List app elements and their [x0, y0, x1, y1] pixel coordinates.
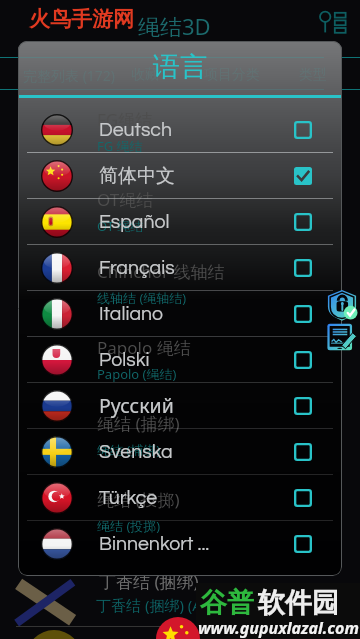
- staticText: FG绳结: [97, 108, 153, 131]
- button[interactable]: Deutsch: [18, 107, 342, 152]
- staticText: 丁香结 (捆绑): [99, 570, 199, 593]
- other: Not selected: [294, 213, 312, 231]
- staticText: 简体中文: [99, 164, 175, 188]
- staticText: OT绳结: [97, 188, 154, 211]
- other: Not selected: [294, 443, 312, 461]
- staticText: 完整列表 (172): [23, 66, 116, 85]
- staticText: 丁香结 (捆绑) (AB...: [96, 595, 224, 615]
- staticText: 类型: [299, 66, 327, 84]
- staticText: 绳结 (捕绑): [97, 412, 180, 435]
- other: Sign document: [326, 323, 354, 351]
- button[interactable]: Русский: [18, 383, 342, 428]
- button[interactable]: 简体中文: [18, 153, 342, 198]
- staticText: Русский: [99, 392, 174, 419]
- staticText: 绳结 (投掷): [97, 488, 180, 511]
- staticText: Chinchor 线轴结: [97, 260, 225, 283]
- staticText: 完整列表 (172): [23, 66, 116, 85]
- staticText: 线轴结 (绳轴结): [97, 289, 187, 307]
- staticText: 收藏: [131, 66, 159, 84]
- other: Not selected: [294, 121, 312, 139]
- other: Not selected: [294, 259, 312, 277]
- other: Search: [316, 6, 356, 46]
- staticText: 谷普: [200, 586, 254, 620]
- staticText: FG 绳结: [97, 137, 143, 155]
- staticText: Deutsch: [99, 120, 173, 140]
- staticText: Español: [99, 212, 170, 232]
- staticText: OT 绳结: [97, 217, 144, 235]
- staticText: 收藏: [131, 66, 159, 84]
- staticText: 绳结 (投掷): [97, 517, 161, 535]
- staticText: www.gupuxlazal.com: [198, 617, 359, 639]
- other: Selected: [294, 167, 312, 185]
- staticText: 火鸟手游网: [29, 6, 134, 32]
- button[interactable]: Polski: [18, 337, 342, 382]
- staticText: Papolo 绳结: [97, 336, 191, 359]
- staticText: Polski: [99, 350, 150, 370]
- staticText: 类型: [299, 66, 327, 84]
- staticText: 绳结 (捕绑): [97, 441, 161, 459]
- staticText: 语言: [153, 50, 207, 84]
- other: Not selected: [294, 535, 312, 553]
- button[interactable]: Binnenkort ...: [18, 521, 342, 566]
- staticText: Français: [99, 258, 175, 278]
- staticText: Italiano: [99, 304, 164, 324]
- button[interactable]: Français: [18, 245, 342, 290]
- staticText: 软件园: [258, 586, 339, 620]
- staticText: 项目分类: [204, 66, 260, 84]
- other: Not selected: [294, 397, 312, 415]
- staticText: Binnenkort ...: [99, 534, 210, 554]
- button[interactable]: Italiano: [18, 291, 342, 336]
- staticText: Papolo (绳结): [97, 365, 177, 383]
- staticText: Türkçe: [99, 488, 158, 508]
- staticText: 项目分类: [204, 66, 260, 84]
- button[interactable]: Español: [18, 199, 342, 244]
- staticText: 绳结3D: [138, 11, 211, 41]
- other: Not selected: [294, 489, 312, 507]
- other: Secure: [326, 289, 358, 321]
- staticText: Svenska: [99, 442, 173, 462]
- button[interactable]: Türkçe: [18, 475, 342, 520]
- button[interactable]: Svenska: [18, 429, 342, 474]
- other: Not selected: [294, 305, 312, 323]
- other: Not selected: [294, 351, 312, 369]
